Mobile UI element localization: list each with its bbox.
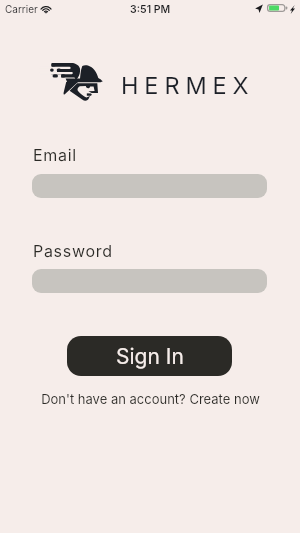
other: Location xyxy=(255,4,263,13)
button[interactable]: Sign In xyxy=(67,336,232,376)
staticText: HERMEX xyxy=(121,71,255,99)
staticText: Sign In xyxy=(116,344,184,369)
staticText: Don't have an account? Create now xyxy=(41,391,260,407)
staticText: Password xyxy=(33,241,113,260)
staticText: Email xyxy=(33,145,77,164)
button[interactable] xyxy=(32,269,267,293)
staticText: 3:51 PM xyxy=(130,3,171,16)
staticText: Carrier xyxy=(5,3,38,15)
button[interactable]: Don't have an account? Create now xyxy=(35,389,266,409)
button[interactable] xyxy=(32,174,267,198)
